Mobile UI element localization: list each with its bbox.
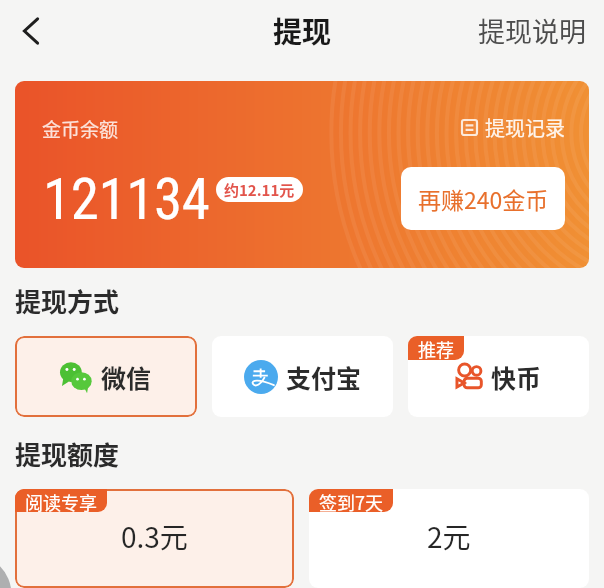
staticText: 微信 [101,359,152,395]
staticText: 支付宝 [286,359,362,395]
staticText: 提现方式 [15,282,120,320]
staticText: 提现 [273,9,332,51]
button[interactable]: 再赚240金币 [401,167,565,230]
staticText: 再赚240金币 [418,182,549,215]
button[interactable]: 0.3元 [15,489,294,588]
staticText: 签到7天 [319,489,383,512]
button[interactable]: 2元 [309,489,589,588]
staticText: 提现额度 [15,435,120,473]
staticText: 121134 [43,166,210,233]
staticText: 约12.11元 [224,179,295,201]
staticText: 快币 [491,359,542,395]
button[interactable]: Back [8,8,54,54]
staticText: 提现记录 [485,113,565,142]
button[interactable]: 提现记录 [461,113,565,142]
staticText: 提现说明 [478,11,586,50]
staticText: 0.3元 [121,516,188,557]
staticText: 2元 [427,516,471,557]
button[interactable]: 微信 [15,336,197,417]
button[interactable]: 提现说明 [478,11,586,50]
staticText: 阅读专享 [25,489,97,512]
button[interactable]: 支付宝 [212,336,393,417]
staticText: 推荐 [418,336,454,360]
staticText: 金币余额 [42,115,119,143]
button[interactable]: 快币 [408,336,589,417]
